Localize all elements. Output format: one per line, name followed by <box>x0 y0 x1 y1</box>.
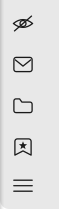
button[interactable]: Hide <box>0 3 46 43</box>
button[interactable]: Files <box>0 85 46 125</box>
button[interactable]: Favourites <box>0 127 46 167</box>
button[interactable]: Mail <box>0 44 46 84</box>
button[interactable]: Menu <box>0 165 46 205</box>
